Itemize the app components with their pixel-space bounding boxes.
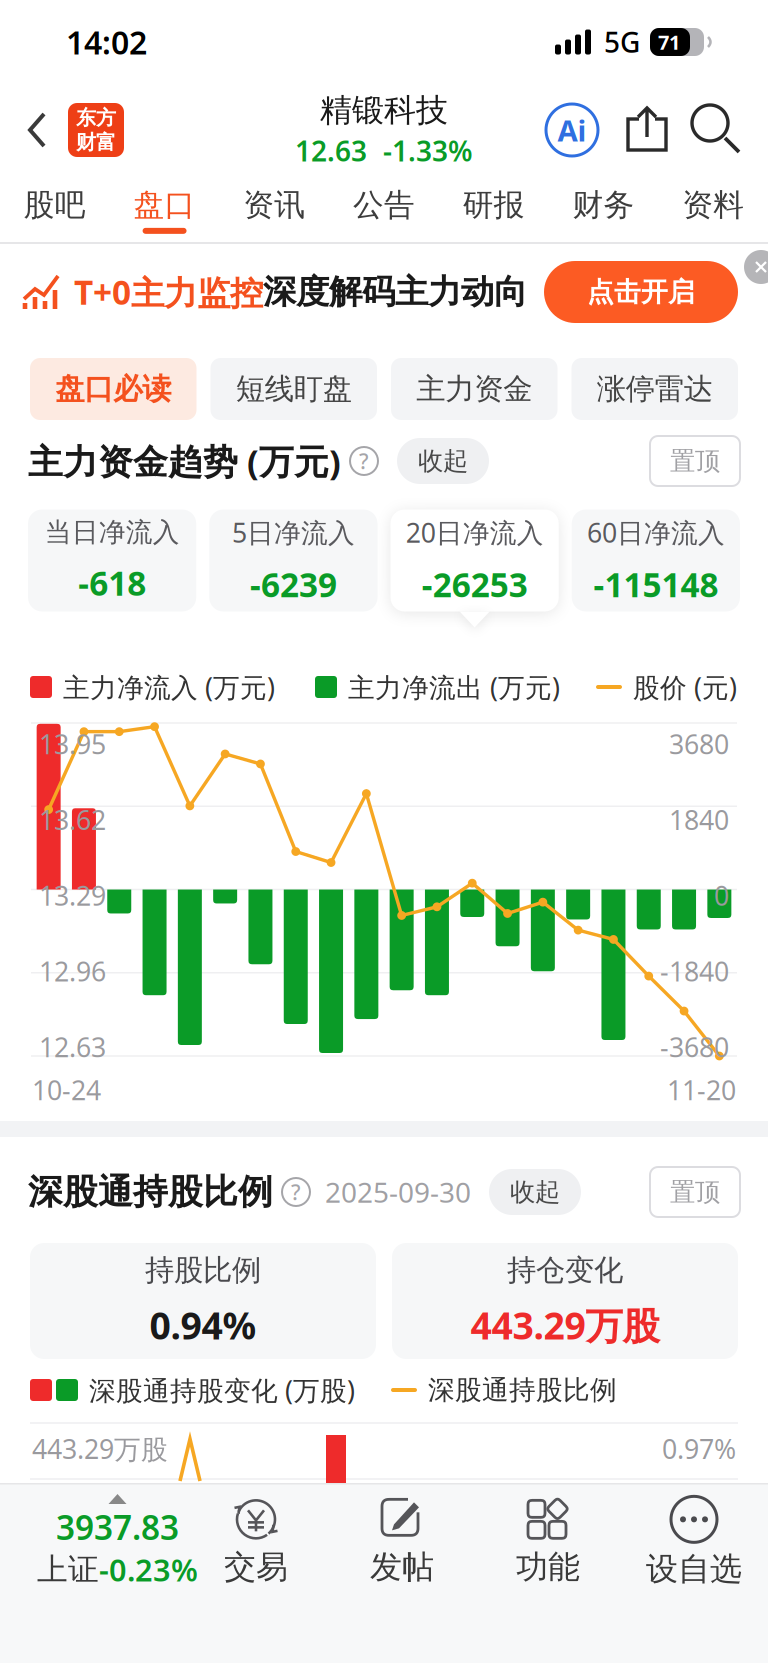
staticText: 3937.83 [56,1505,179,1549]
button[interactable]: 持股比例 [30,1243,376,1359]
button[interactable]: 资讯 [219,176,329,244]
staticText: 20日净流入 [406,515,544,550]
button[interactable]: 财务 [549,176,658,244]
staticText: 盘口必读 [55,371,171,407]
staticText: 资讯 [243,186,305,224]
staticText: 功能 [516,1547,580,1587]
button[interactable]: Share [600,105,670,155]
staticText: 443.29万股 [32,1431,168,1466]
staticText: 短线盯盘 [236,371,352,407]
staticText: 11-20 [667,1072,736,1108]
staticText: 收起 [510,1176,560,1207]
staticText: 当日净流入 [45,516,180,549]
staticText: T+0主力监控 [74,270,263,314]
staticText: 持股比例 [145,1252,261,1288]
staticText: 深股通持股变化 (万股) [89,1372,355,1408]
staticText: 12.96 [39,953,106,989]
staticText: 盘口 [134,186,196,224]
staticText: 2025-09-30 [325,1173,471,1211]
staticText: 443.29万股 [470,1300,659,1350]
button[interactable]: 3937.83 [37,1494,183,1590]
button[interactable]: 股吧 [0,176,110,244]
staticText: 持仓变化 [507,1252,623,1288]
staticText: 主力净流入 (万元) [63,669,275,705]
staticText: 12.63 [295,132,367,169]
button[interactable]: 设自选 [621,1492,767,1592]
staticText: 0.94% [149,1300,256,1350]
button[interactable]: AI assistant [544,102,600,158]
button[interactable]: 5日净流入 [209,509,377,628]
button[interactable]: 置顶 [650,436,740,486]
button[interactable]: 盘口必读 [30,358,196,420]
button[interactable]: 60日净流入 [572,509,740,628]
staticText: 设自选 [646,1549,742,1589]
button[interactable]: 发帖 [329,1492,475,1592]
button[interactable]: 收起 [489,1169,581,1215]
staticText: 0 [714,878,729,913]
button[interactable]: 短线盯盘 [210,358,377,420]
staticText: 5日净流入 [232,515,355,550]
staticText: 研报 [463,186,525,224]
staticText: -26253 [422,562,528,606]
staticText: -1840 [660,953,729,989]
staticText: 财富 [76,130,116,155]
staticText: -115148 [593,562,718,606]
staticText: ? [359,447,369,475]
staticText: 东方 [76,105,116,130]
button[interactable]: Close banner [744,244,768,284]
button[interactable]: 资料 [658,176,768,244]
button[interactable]: 交易 [183,1492,329,1592]
staticText: ? [291,1178,301,1206]
staticText: -3680 [660,1029,729,1065]
button[interactable]: 功能 [475,1492,621,1592]
button[interactable]: 收起 [397,438,489,484]
staticText: 置顶 [670,445,720,476]
staticText: 1840 [669,802,729,837]
staticText: 13.62 [39,802,106,837]
staticText: 深股通持股比例 [428,1374,617,1406]
staticText: 发帖 [370,1547,434,1587]
staticText: 股价 (元) [633,669,737,705]
button[interactable]: 研报 [439,176,549,244]
staticText: 71 [658,29,680,55]
button[interactable]: 涨停雷达 [571,358,738,420]
button[interactable]: 置顶 [650,1167,740,1217]
staticText: 主力资金 [416,371,532,407]
button[interactable]: Search [670,105,742,155]
staticText: 交易 [224,1547,288,1587]
staticText: 深度解码主力动向 [263,271,527,312]
staticText: 收起 [418,445,468,476]
button[interactable]: 主力资金 [391,358,557,420]
staticText: -1.33% [383,132,473,169]
staticText: 公告 [353,186,415,224]
staticText: 股吧 [24,186,86,224]
staticText: 财务 [572,186,634,224]
staticText: 点击开启 [587,276,695,308]
staticText: 3680 [669,726,729,762]
button[interactable]: 持仓变化 [392,1243,738,1359]
staticText: 涨停雷达 [597,371,713,407]
staticText: 主力净流出 (万元) [348,669,560,705]
staticText: 主力资金趋势 (万元) [28,438,341,484]
button[interactable]: 公告 [329,176,439,244]
button[interactable]: 点击开启 [544,261,738,323]
staticText: 精锻科技 [320,91,448,130]
button[interactable]: 20日净流入 [390,509,559,628]
staticText: 资料 [682,186,744,224]
button[interactable]: 当日净流入 [28,509,196,628]
staticText: 12.63 [39,1029,106,1065]
button[interactable]: Back [0,111,68,149]
staticText: 13.95 [39,726,106,762]
staticText: -6239 [250,562,337,606]
staticText: 13.29 [39,878,106,913]
button[interactable]: East Money home [68,103,124,157]
button[interactable]: 盘口 [110,176,219,244]
staticText: -0.23% [99,1549,198,1590]
staticText: 0.97% [662,1431,736,1466]
staticText: 10-24 [32,1072,101,1108]
staticText: -618 [78,561,146,605]
staticText: 60日净流入 [587,515,725,550]
staticText: 5G [604,23,640,61]
staticText: 14:02 [66,21,147,63]
staticText: 深股通持股比例 [28,1171,273,1213]
